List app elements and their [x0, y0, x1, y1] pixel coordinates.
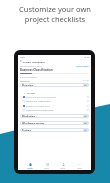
staticText: 3/8: [84, 84, 87, 86]
staticText: Assemble core project team: [26, 109, 54, 112]
button[interactable]: Tasks: [43, 163, 51, 170]
staticText: 6 of 26 completed: [20, 76, 37, 79]
staticText: Marketing: [22, 115, 36, 118]
staticText: Wireframe review: [22, 122, 45, 125]
button[interactable]: More: [76, 163, 83, 170]
other: Tasks: [46, 163, 49, 166]
button[interactable]: Home: [26, 163, 34, 170]
button[interactable]: Assemble core project team: [23, 108, 89, 112]
staticText: Sections: [20, 79, 30, 82]
staticText: 0/6: [84, 122, 87, 124]
staticText: See all tasks: [76, 65, 89, 68]
button[interactable]: Team: [59, 163, 67, 170]
staticText: + Add task: [24, 92, 36, 95]
button[interactable]: Wireframe review: [20, 121, 89, 125]
staticText: Business Classification: [20, 68, 53, 72]
staticText: Tasks: [44, 167, 50, 170]
staticText: Team: [60, 167, 66, 170]
staticText: Define project scope and goals: [26, 96, 57, 99]
other: Home: [29, 163, 32, 166]
button[interactable]: Marketing: [20, 114, 89, 118]
button[interactable]: Review the budget draft: [23, 104, 89, 108]
other: More: [78, 163, 81, 166]
staticText: Identify key stakeholders: [26, 100, 51, 103]
button[interactable]: + Add task: [24, 92, 36, 95]
staticText: 0/5: [84, 115, 87, 117]
staticText: 0/7: [84, 129, 87, 131]
button[interactable]: Testing: [20, 128, 89, 132]
button[interactable]: Back: [20, 59, 91, 63]
button[interactable]: Define project scope and goals: [23, 95, 89, 99]
staticText: Project dashboard: [23, 60, 45, 63]
staticText: Home: [27, 167, 33, 170]
staticText: Testing: [22, 129, 32, 132]
staticText: Review the budget draft: [26, 105, 50, 108]
staticText: 6 / 26: [83, 79, 89, 82]
button[interactable]: Identify key stakeholders: [23, 99, 89, 103]
other: Team: [62, 163, 65, 166]
staticText: Planning: [22, 84, 33, 87]
staticText: Customize your own project checklists: [0, 4, 110, 24]
button[interactable]: See all tasks: [76, 65, 89, 68]
staticText: Started Sept 12, 2019: [20, 65, 42, 68]
other: Back: [20, 60, 22, 62]
staticText: More: [77, 167, 82, 170]
button[interactable]: Planning: [20, 83, 89, 87]
